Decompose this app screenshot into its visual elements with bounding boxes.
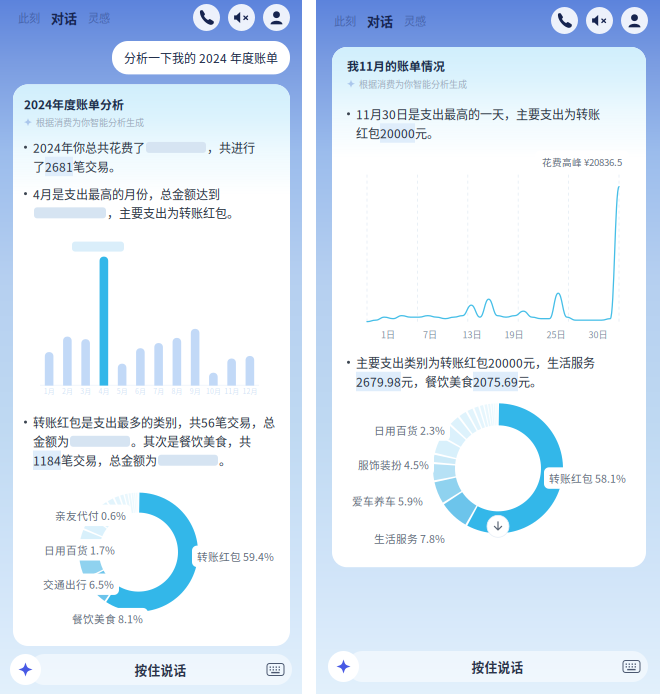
button[interactable]: Expand <box>487 515 509 537</box>
staticText: 3月 <box>80 386 91 396</box>
staticText: 2024年度账单分析 <box>24 95 124 113</box>
staticText: 2681 <box>45 158 73 175</box>
staticText: 亲友代付 0.6% <box>55 508 126 523</box>
staticText: 金额为 <box>33 433 69 450</box>
staticText: 分析一下我的 2024 年度账单 <box>124 49 278 66</box>
button[interactable]: Keyboard <box>615 651 648 681</box>
button[interactable]: 对话 <box>51 8 77 27</box>
staticText: 20000 <box>380 124 415 142</box>
staticText: 生活服务 7.8% <box>374 531 445 546</box>
staticText: 13日 <box>462 328 481 341</box>
staticText: 根据消费为你智能分析生成 <box>36 116 144 129</box>
button[interactable]: Mute <box>586 7 613 34</box>
staticText: 转账红包 59.4% <box>197 549 274 564</box>
staticText: 转账红包 58.1% <box>549 470 626 486</box>
staticText: 30日 <box>588 328 607 341</box>
staticText: 了 <box>33 158 45 175</box>
staticText: 25日 <box>546 328 565 341</box>
button[interactable]: Profile <box>263 4 290 31</box>
button[interactable]: 此刻 <box>334 12 356 29</box>
staticText: 花费高峰 ¥20836.5 <box>542 155 622 169</box>
staticText: 7月 <box>153 386 164 396</box>
staticText: 。其次是餐饮美食，共 <box>131 433 251 450</box>
staticText: 元，餐饮美食 <box>401 373 473 390</box>
staticText: 4月 <box>98 386 109 396</box>
staticText: 19日 <box>504 328 523 341</box>
staticText: 此刻 <box>18 9 40 26</box>
button[interactable]: Keyboard <box>259 654 292 684</box>
staticText: 10月 <box>206 386 221 396</box>
staticText: ，主要支出为转账红包。 <box>107 204 239 222</box>
staticText: 笔交易，总金额为 <box>61 451 157 469</box>
staticText: 1日 <box>381 328 395 341</box>
staticText: 主要支出类别为转账红包20000元，生活服务 <box>356 354 595 371</box>
staticText: ，共进行 <box>207 139 255 156</box>
staticText: 转账红包是支出最多的类别，共56笔交易，总 <box>33 414 275 431</box>
staticText: 元。 <box>415 124 439 142</box>
button[interactable]: 灵感 <box>88 9 110 26</box>
staticText: 2024年你总共花费了 <box>33 139 145 156</box>
staticText: 按住说话 <box>134 660 186 679</box>
staticText: 元。 <box>518 373 542 390</box>
staticText: 爱车养车 5.9% <box>352 493 423 509</box>
staticText: 11月30日是支出最高的一天，主要支出为转账 <box>356 105 600 123</box>
button[interactable]: Call <box>551 7 578 34</box>
staticText: 按住说话 <box>471 657 523 676</box>
staticText: 对话 <box>367 11 393 30</box>
staticText: 我11月的账单情况 <box>347 57 445 74</box>
staticText: 6月 <box>135 386 146 396</box>
staticText: 服饰装扮 4.5% <box>358 457 429 472</box>
button[interactable]: Voice assistant <box>328 651 359 682</box>
staticText: 灵感 <box>404 12 426 29</box>
staticText: 7日 <box>423 328 437 341</box>
staticText: 1184 <box>33 451 61 469</box>
staticText: 笔交易。 <box>73 158 121 175</box>
staticText: 餐饮美食 8.1% <box>72 611 143 626</box>
staticText: 日用百货 1.7% <box>44 542 115 557</box>
button[interactable]: 灵感 <box>404 12 426 29</box>
button[interactable]: 此刻 <box>18 9 40 26</box>
staticText: 11月 <box>224 386 239 396</box>
staticText: 2月 <box>62 386 73 396</box>
button[interactable]: Profile <box>621 7 648 34</box>
staticText: 12月 <box>242 386 257 396</box>
staticText: 1月 <box>44 386 55 396</box>
button[interactable]: Mute <box>228 4 255 31</box>
staticText: 9月 <box>190 386 201 396</box>
staticText: 根据消费为你智能分析生成 <box>359 77 467 90</box>
staticText: 5月 <box>117 386 128 396</box>
staticText: 对话 <box>51 8 77 27</box>
staticText: 2075.69 <box>473 373 518 390</box>
button[interactable]: Call <box>193 4 220 31</box>
button[interactable]: Voice assistant <box>10 654 41 685</box>
staticText: 4月是支出最高的月份，总金额达到 <box>33 185 220 203</box>
staticText: 红包 <box>356 124 380 142</box>
button[interactable]: 对话 <box>367 11 393 30</box>
staticText: 日用百货 2.3% <box>374 422 445 438</box>
staticText: 2679.98 <box>356 373 401 390</box>
staticText: 此刻 <box>334 12 356 29</box>
staticText: 。 <box>219 451 231 469</box>
staticText: 8月 <box>171 386 182 396</box>
staticText: 交通出行 6.5% <box>43 576 114 592</box>
staticText: 灵感 <box>88 9 110 26</box>
